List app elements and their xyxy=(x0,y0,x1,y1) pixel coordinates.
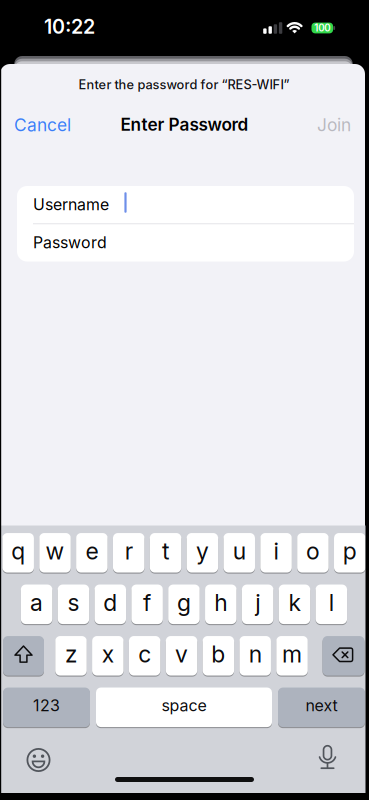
staticText: Password xyxy=(33,233,107,252)
staticText: 123 xyxy=(33,696,60,715)
button[interactable]: l xyxy=(316,583,347,625)
staticText: e xyxy=(85,537,98,565)
button[interactable]: k xyxy=(279,583,310,625)
staticText: q xyxy=(11,537,25,565)
staticText: g xyxy=(177,588,191,616)
staticText: Username xyxy=(33,195,109,214)
button[interactable]: i xyxy=(260,532,292,573)
button[interactable]: m xyxy=(276,635,308,676)
button[interactable]: f xyxy=(131,583,163,625)
staticText: b xyxy=(211,640,225,668)
button[interactable]: d xyxy=(94,583,126,625)
staticText: s xyxy=(67,588,79,616)
staticText: next xyxy=(305,696,337,715)
button[interactable]: u xyxy=(223,532,255,573)
staticText: space xyxy=(161,696,206,715)
staticText: p xyxy=(343,537,357,565)
button[interactable]: z xyxy=(55,635,87,676)
staticText: Join xyxy=(317,114,351,135)
button[interactable] xyxy=(322,635,364,676)
button[interactable]: y xyxy=(187,532,218,573)
button[interactable]: j xyxy=(242,583,273,625)
button[interactable]: Join xyxy=(317,114,351,135)
staticText: m xyxy=(282,640,302,668)
staticText: h xyxy=(214,588,227,616)
button[interactable]: h xyxy=(205,583,237,625)
staticText: j xyxy=(255,588,260,616)
button[interactable]: space xyxy=(96,686,272,728)
button[interactable]: b xyxy=(203,635,234,676)
staticText: 100 xyxy=(314,22,330,34)
staticText: Enter Password xyxy=(120,114,248,135)
staticText: w xyxy=(45,537,64,565)
staticText: 10:22 xyxy=(44,15,95,38)
button[interactable]: v xyxy=(166,635,197,676)
button[interactable]: r xyxy=(113,532,144,573)
staticText: l xyxy=(329,588,334,616)
staticText: Cancel xyxy=(14,114,71,135)
staticText: n xyxy=(249,640,262,668)
button[interactable]: next xyxy=(278,686,365,728)
staticText: a xyxy=(30,588,43,616)
staticText: o xyxy=(306,537,320,565)
staticText: k xyxy=(288,588,300,616)
button[interactable]: q xyxy=(2,532,34,573)
staticText: c xyxy=(138,640,151,668)
button[interactable]: 123 xyxy=(3,686,90,728)
staticText: t xyxy=(162,537,169,565)
staticText: z xyxy=(65,640,77,668)
staticText: u xyxy=(233,537,246,565)
staticText: x xyxy=(102,640,114,668)
staticText: r xyxy=(125,537,133,565)
button[interactable]: p xyxy=(334,532,365,573)
button[interactable]: s xyxy=(58,583,89,625)
button[interactable] xyxy=(3,635,44,676)
button[interactable]: n xyxy=(239,635,271,676)
button[interactable]: a xyxy=(21,583,52,625)
button[interactable]: x xyxy=(92,635,124,676)
staticText: d xyxy=(103,588,117,616)
button[interactable]: t xyxy=(150,532,181,573)
button[interactable]: Password xyxy=(17,224,354,261)
staticText: Enter the password for “RES-WIFI” xyxy=(78,77,289,92)
staticText: i xyxy=(274,537,279,565)
button[interactable]: c xyxy=(129,635,160,676)
button[interactable] xyxy=(307,737,347,777)
button[interactable]: o xyxy=(297,532,329,573)
button[interactable]: w xyxy=(39,532,71,573)
button[interactable]: Username xyxy=(17,186,354,223)
button[interactable]: Cancel xyxy=(14,114,71,135)
staticText: v xyxy=(175,640,188,668)
button[interactable] xyxy=(18,740,58,780)
staticText: y xyxy=(196,537,209,565)
button[interactable]: e xyxy=(76,532,108,573)
staticText: f xyxy=(143,588,151,616)
button[interactable]: g xyxy=(168,583,200,625)
